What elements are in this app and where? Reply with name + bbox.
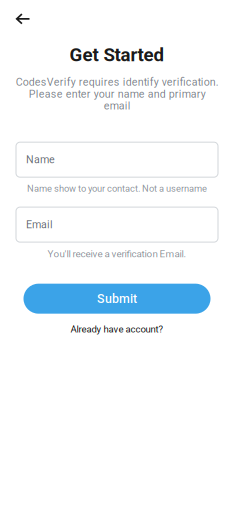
staticText: Already have account?	[70, 324, 163, 335]
staticText: You'll receive a verification Email.	[47, 248, 186, 260]
staticText: CodesVerify requires identify verificati…	[15, 76, 218, 112]
button[interactable]: Submit	[23, 284, 210, 314]
button[interactable]: Already have account?	[60, 319, 173, 340]
staticText: Get Started	[69, 44, 164, 66]
button[interactable]: Back	[8, 6, 38, 32]
staticText: Submit	[97, 291, 137, 306]
staticText: Name show to your contact. Not a usernam…	[27, 183, 207, 194]
staticText: Email	[26, 218, 53, 231]
staticText: Name	[26, 153, 55, 166]
button[interactable]: Email	[16, 207, 218, 242]
button[interactable]: Name	[16, 142, 218, 177]
